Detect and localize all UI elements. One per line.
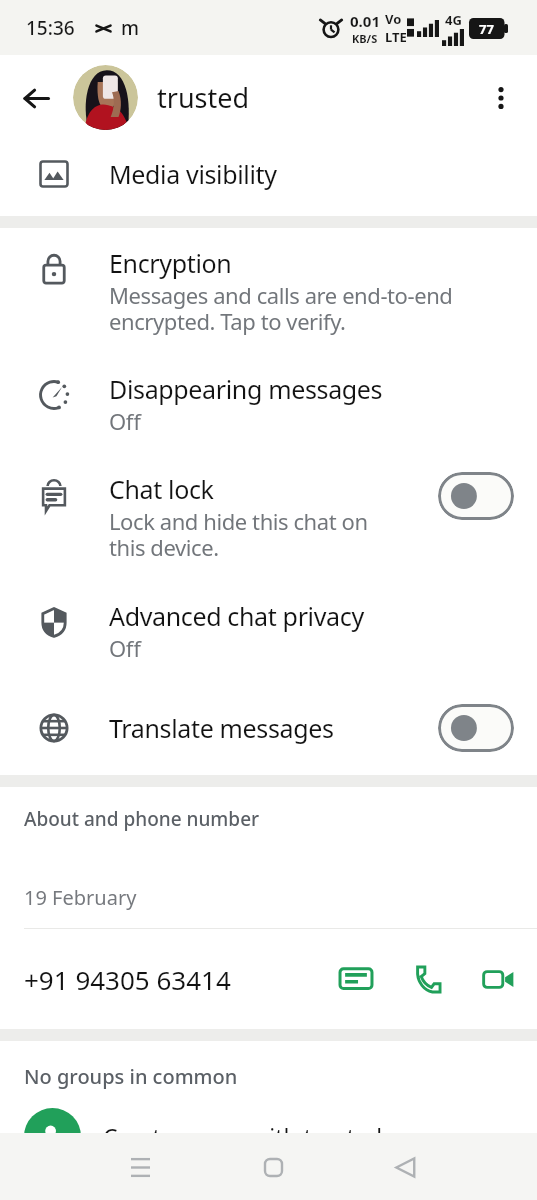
button[interactable]: Create group with trusted: [0, 1108, 537, 1165]
staticText: Messages and calls are end-to-end encryp…: [109, 280, 453, 337]
staticText: 77: [479, 20, 494, 38]
button[interactable]: Message: [332, 955, 380, 1003]
staticText: No groups in common: [24, 1063, 238, 1090]
staticText: LTE: [385, 28, 407, 46]
button[interactable]: Disappearing messages: [0, 353, 537, 452]
button[interactable]: Back: [378, 1140, 433, 1195]
button[interactable]: Translate messages: [0, 679, 537, 775]
staticText: KB/S: [352, 31, 378, 46]
staticText: Off: [109, 633, 141, 663]
button[interactable]: Toggle: [438, 704, 514, 752]
staticText: Encryption: [109, 246, 232, 280]
staticText: 4G: [445, 11, 462, 29]
staticText: Off: [109, 406, 141, 436]
staticText: 15:36: [26, 15, 75, 41]
button[interactable]: Back: [12, 74, 60, 122]
button[interactable]: Encryption: [0, 228, 537, 353]
button[interactable]: Home: [246, 1140, 301, 1195]
button[interactable]: Advanced chat privacy: [0, 579, 537, 679]
staticText: Media visibility: [109, 157, 277, 191]
button[interactable]: Recents: [113, 1140, 168, 1195]
staticText: m: [121, 15, 139, 41]
staticText: +91 94305 63414: [24, 962, 231, 997]
button[interactable]: Media visibility: [0, 140, 537, 216]
button[interactable]: Chat lock: [0, 452, 537, 579]
staticText: trusted: [157, 79, 250, 116]
staticText: Create group with trusted: [103, 1121, 383, 1152]
staticText: Chat lock: [109, 472, 214, 506]
staticText: Translate messages: [109, 711, 334, 745]
staticText: Lock and hide this chat on this device.: [109, 506, 368, 563]
staticText: 19 February: [24, 884, 137, 911]
staticText: Disappearing messages: [109, 372, 383, 406]
staticText: 0.01: [350, 11, 380, 31]
button[interactable]: Video call: [474, 955, 522, 1003]
button[interactable]: Call: [403, 955, 451, 1003]
staticText: Advanced chat privacy: [109, 599, 364, 633]
staticText: About and phone number: [24, 806, 260, 832]
button[interactable]: Toggle: [438, 472, 514, 520]
staticText: Vo: [385, 10, 402, 28]
button[interactable]: More options: [477, 74, 525, 122]
